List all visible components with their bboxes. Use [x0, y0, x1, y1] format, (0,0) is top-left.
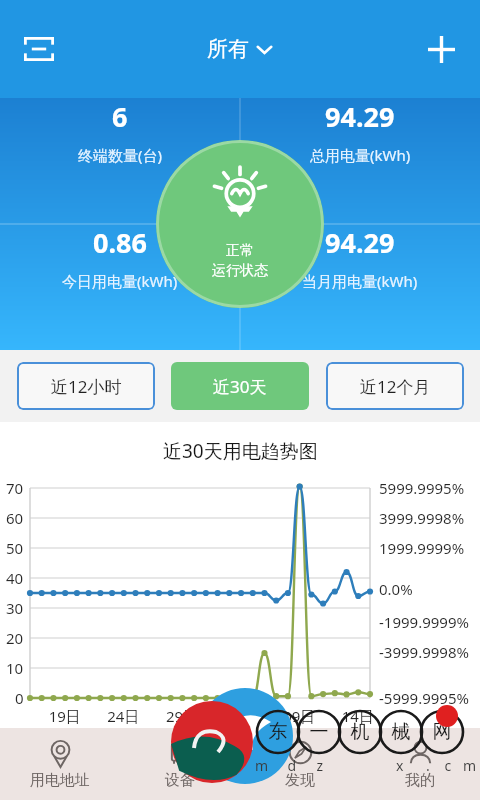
button[interactable]: 近12小时 [17, 362, 155, 410]
button[interactable]: 我的 [360, 728, 480, 800]
staticText: 发现 [285, 771, 315, 790]
staticText: 用电地址 [30, 771, 90, 790]
staticText: 近30天用电趋势图 [163, 438, 318, 464]
staticText: 运行状态 [212, 262, 268, 280]
button[interactable]: 近12个月 [326, 362, 464, 410]
button[interactable]: 所有 [201, 30, 279, 68]
button[interactable]: 正常 [156, 140, 324, 308]
staticText: 总用电量(kWh) [310, 145, 411, 165]
staticText: 近12个月 [360, 375, 431, 398]
staticText: 终端数量(台) [78, 145, 163, 165]
button[interactable]: 近30天 [171, 362, 309, 410]
staticText: 近30天 [213, 375, 267, 398]
staticText: 6 [112, 98, 128, 135]
staticText: 今日用电量(kWh) [62, 271, 178, 291]
staticText: 近12小时 [51, 375, 122, 398]
button[interactable]: Menu [12, 22, 66, 76]
staticText: 设备 [165, 771, 195, 790]
staticText: 94.29 [325, 98, 395, 135]
button[interactable]: Add [414, 22, 468, 76]
staticText: 正常 [226, 242, 254, 260]
button[interactable]: 设备 [120, 728, 240, 800]
button[interactable]: 94.29 [240, 224, 480, 291]
button[interactable]: 用电地址 [0, 728, 120, 800]
button[interactable]: 0.86 [0, 224, 240, 291]
button[interactable]: 发现 [240, 728, 360, 800]
button[interactable]: 94.29 [240, 98, 480, 165]
staticText: 94.29 [325, 224, 395, 261]
staticText: 我的 [405, 771, 435, 790]
staticText: 当月用电量(kWh) [302, 271, 418, 291]
staticText: 所有 [207, 36, 249, 62]
button[interactable]: 6 [0, 98, 240, 165]
staticText: 0.86 [93, 224, 147, 261]
